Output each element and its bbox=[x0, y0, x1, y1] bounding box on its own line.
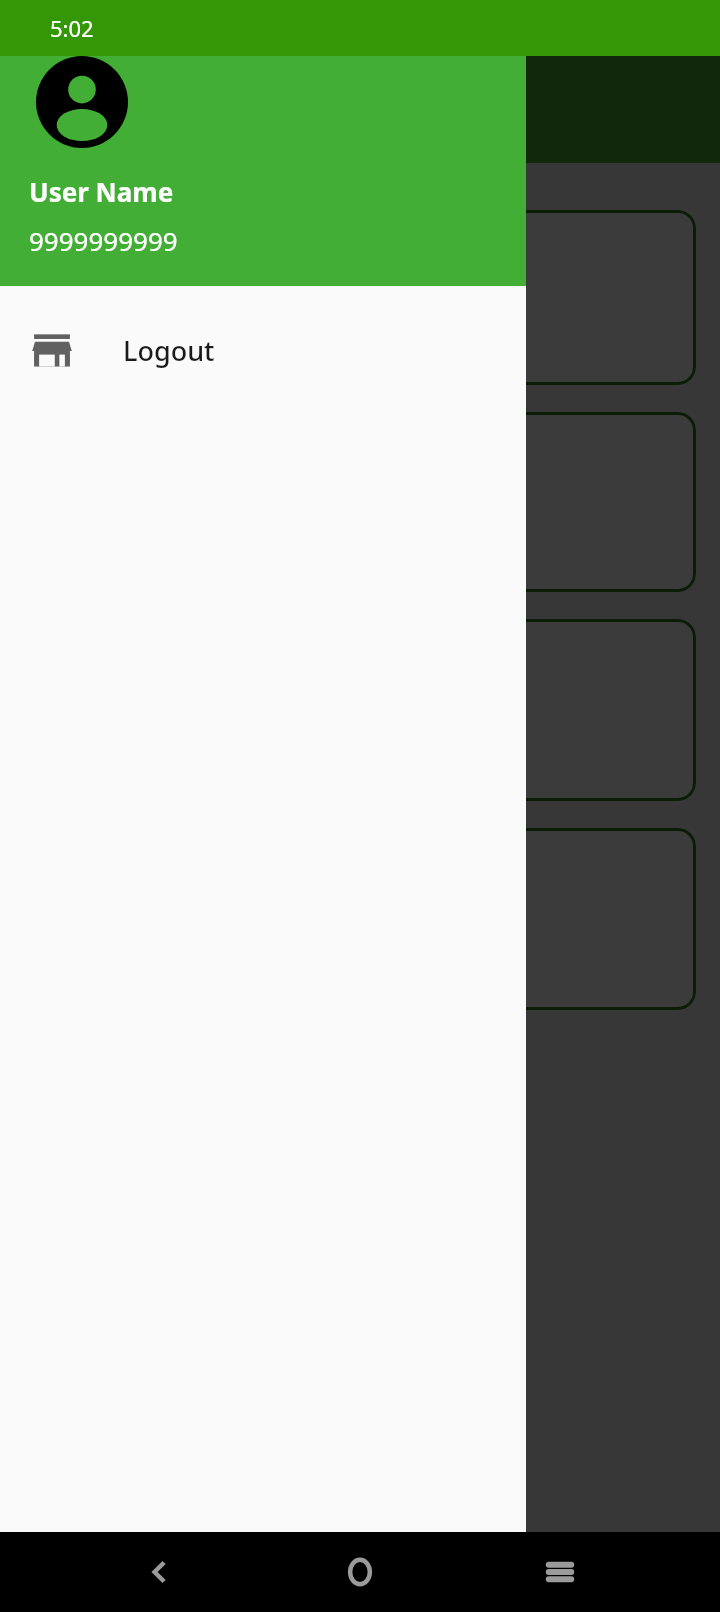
button[interactable]: Weather Data bbox=[24, 619, 696, 801]
staticText: Weather Demo bbox=[254, 277, 467, 318]
staticText: 9999999999 bbox=[29, 223, 178, 258]
button[interactable]: Latest News bbox=[24, 412, 696, 592]
button[interactable]: More Options bbox=[24, 828, 696, 1010]
button[interactable]: Recent apps bbox=[520, 1532, 600, 1612]
button[interactable]: Logout bbox=[0, 286, 526, 414]
button[interactable]: Weather Demo bbox=[24, 210, 696, 385]
staticText: 5:02 bbox=[50, 13, 94, 43]
button[interactable]: Home bbox=[320, 1532, 400, 1612]
button[interactable]: Back bbox=[120, 1532, 200, 1612]
button[interactable]: Open navigation drawer bbox=[18, 80, 78, 140]
staticText: Demo App bbox=[100, 93, 226, 127]
staticText: Logout bbox=[123, 332, 215, 369]
staticText: User Name bbox=[29, 174, 174, 209]
